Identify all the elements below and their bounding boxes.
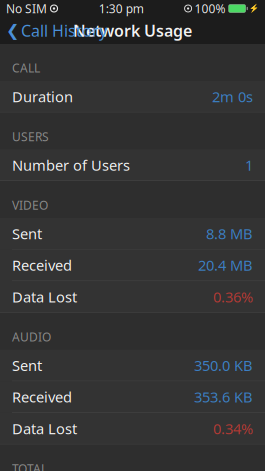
button[interactable]: Data Lost bbox=[0, 413, 265, 444]
button[interactable]: Duration bbox=[0, 81, 265, 112]
staticText: No SIM bbox=[6, 0, 47, 16]
button[interactable]: Received bbox=[0, 250, 265, 281]
staticText: TOTAL bbox=[12, 460, 47, 471]
staticText: VIDEO bbox=[12, 197, 48, 213]
staticText: CALL bbox=[12, 60, 40, 76]
staticText: ❮ bbox=[6, 21, 19, 40]
staticText: 100% bbox=[195, 0, 226, 16]
staticText: ⚡ bbox=[249, 4, 259, 13]
staticText: USERS bbox=[12, 128, 49, 144]
staticText: AUDIO bbox=[12, 329, 51, 345]
staticText: 1:30 pm bbox=[99, 0, 144, 16]
staticText: 350.0 KB bbox=[194, 355, 253, 375]
staticText: 0.36% bbox=[213, 287, 253, 306]
staticText: Data Lost bbox=[12, 419, 77, 438]
button[interactable]: ❮ bbox=[0, 17, 113, 44]
staticText: 1 bbox=[245, 155, 253, 175]
staticText: Sent bbox=[12, 355, 42, 375]
staticText: 20.4 MB bbox=[198, 255, 253, 275]
staticText: Number of Users bbox=[12, 155, 130, 175]
staticText: Data Lost bbox=[12, 287, 77, 306]
button[interactable]: Number of Users bbox=[0, 149, 265, 181]
staticText: 8.8 MB bbox=[206, 224, 253, 243]
staticText: Received bbox=[12, 387, 72, 407]
staticText: Call History bbox=[21, 20, 107, 41]
staticText: Received bbox=[12, 255, 72, 275]
staticText: 0.34% bbox=[213, 419, 253, 438]
staticText: 2m 0s bbox=[212, 87, 253, 106]
button[interactable]: Data Lost bbox=[0, 281, 265, 313]
staticText: Network Usage bbox=[73, 20, 192, 41]
button[interactable]: Received bbox=[0, 381, 265, 413]
staticText: Duration bbox=[12, 87, 73, 106]
button[interactable]: Sent bbox=[0, 218, 265, 250]
staticText: 353.6 KB bbox=[194, 387, 253, 407]
staticText: Sent bbox=[12, 224, 42, 243]
button[interactable]: Sent bbox=[0, 350, 265, 381]
